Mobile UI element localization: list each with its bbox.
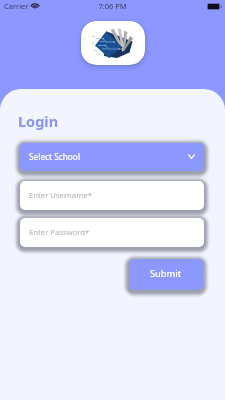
staticText: Carrier [4,1,29,11]
other: Battery [207,3,222,10]
staticText: Enter Username* [29,190,92,200]
staticText: Login [18,111,59,131]
button[interactable]: Enter Username* [20,181,204,210]
staticText: 7:06 PM [0,1,225,11]
other: Expand school list [188,154,195,159]
staticText: Select School [29,151,81,162]
button[interactable]: Enter Password* [20,218,204,247]
staticText: Submit [150,267,182,280]
staticText: Enter Password* [29,227,90,237]
button[interactable]: Select School [20,143,204,171]
other: Wi-Fi [30,2,40,9]
button[interactable]: Submit [129,259,203,290]
